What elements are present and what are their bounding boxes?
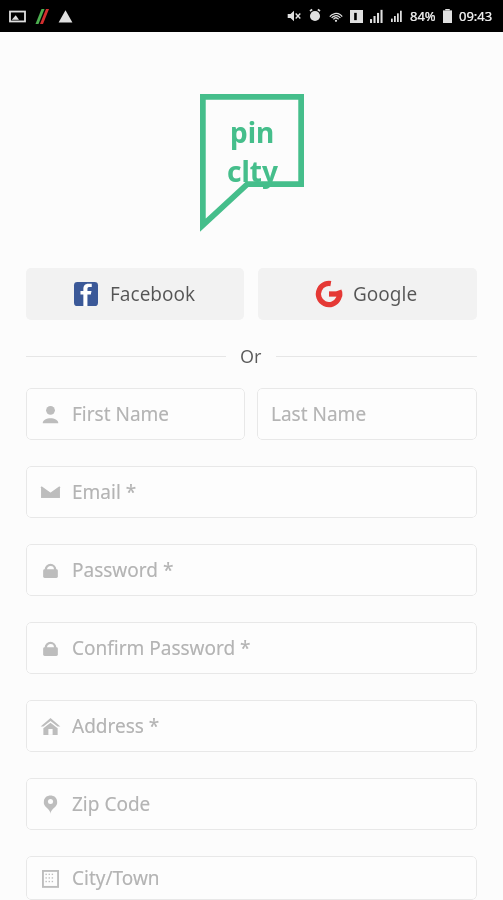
staticText: Or: [240, 344, 262, 369]
button[interactable]: Confirm Password *: [26, 622, 477, 674]
staticText: Last Name: [271, 401, 367, 427]
staticText: Zip Code: [72, 791, 151, 817]
staticText: 09:43: [459, 7, 493, 25]
button[interactable]: Facebook: [26, 268, 244, 320]
button[interactable]: Address *: [26, 700, 477, 752]
staticText: City/Town: [72, 865, 160, 891]
button[interactable]: Password *: [26, 544, 477, 596]
button[interactable]: First Name: [26, 388, 245, 440]
staticText: Confirm Password *: [72, 635, 251, 661]
staticText: clty: [227, 152, 278, 190]
button[interactable]: Zip Code: [26, 778, 477, 830]
staticText: 84%: [410, 7, 436, 25]
button[interactable]: Last Name: [257, 388, 477, 440]
staticText: First Name: [72, 401, 170, 427]
staticText: Google: [353, 281, 418, 307]
staticText: pin: [230, 113, 275, 151]
button[interactable]: City/Town: [26, 856, 477, 900]
button[interactable]: Email *: [26, 466, 477, 518]
staticText: Facebook: [110, 281, 196, 307]
button[interactable]: Google: [258, 268, 477, 320]
staticText: Email *: [72, 479, 137, 505]
staticText: Address *: [72, 713, 160, 739]
staticText: Password *: [72, 557, 174, 583]
